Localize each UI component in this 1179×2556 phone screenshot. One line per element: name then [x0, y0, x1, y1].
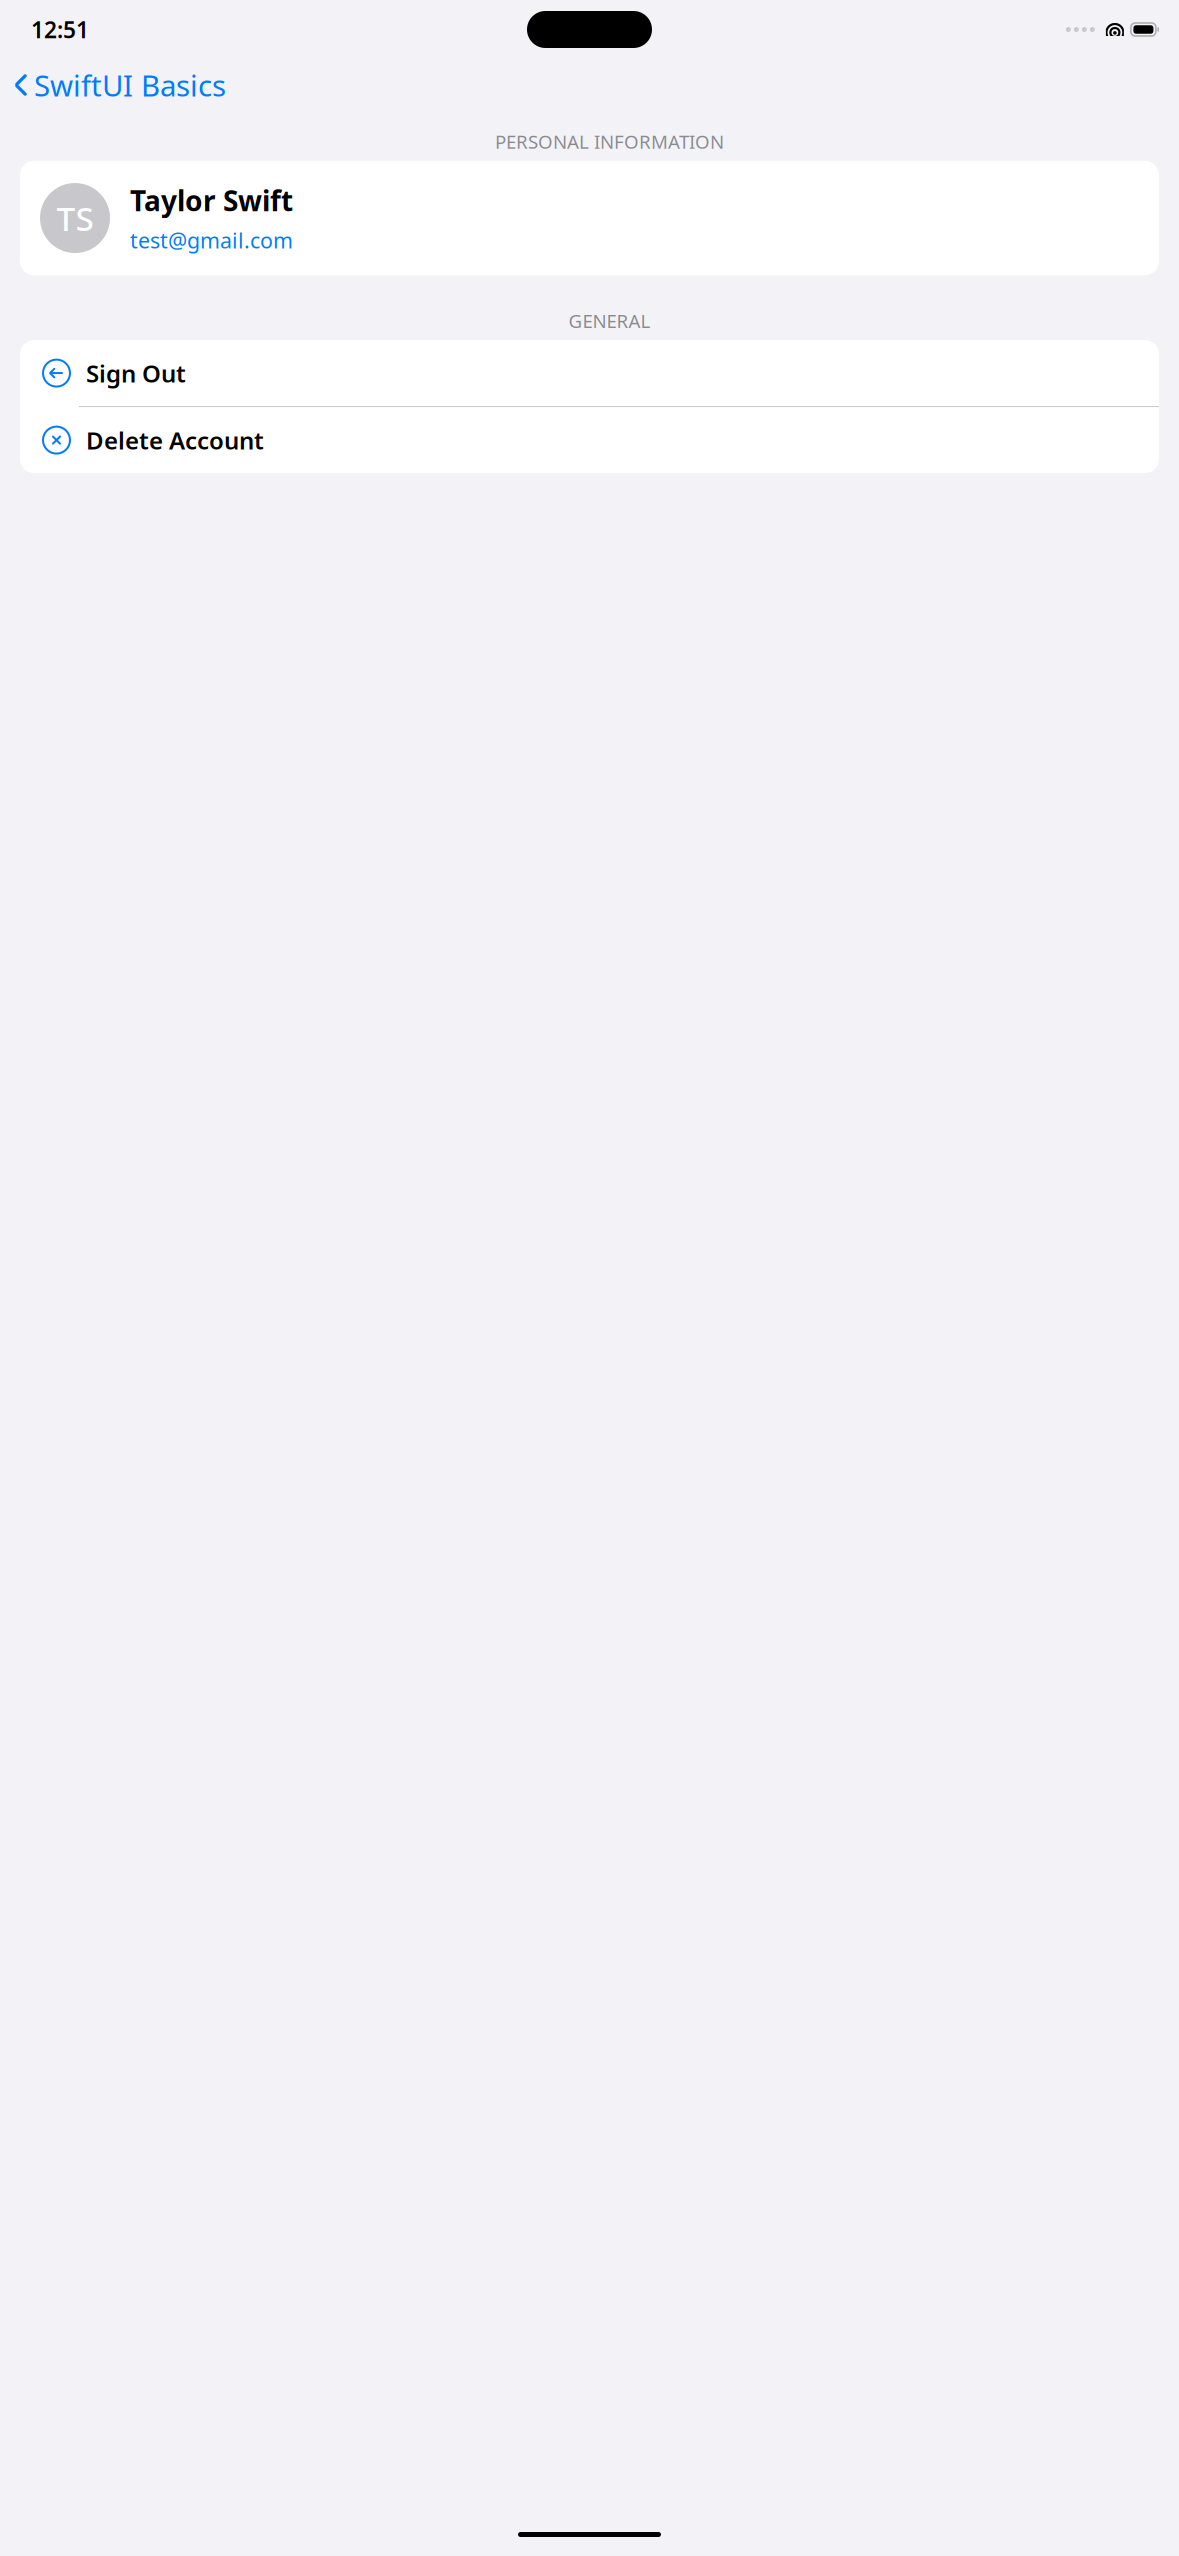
staticText: test@gmail.com [130, 226, 293, 254]
staticText: GENERAL [568, 308, 650, 333]
button[interactable]: Sign Out [20, 340, 1159, 406]
staticText: PERSONAL INFORMATION [495, 129, 724, 154]
staticText: 12:51 [31, 14, 89, 44]
staticText: TS [56, 196, 93, 240]
staticText: Delete Account [86, 424, 264, 456]
staticText: Taylor Swift [130, 182, 293, 219]
staticText: Sign Out [86, 357, 186, 389]
staticText: SwiftUI Basics [34, 65, 226, 104]
button[interactable]: SwiftUI Basics [0, 57, 236, 112]
button[interactable]: Delete Account [20, 407, 1159, 473]
